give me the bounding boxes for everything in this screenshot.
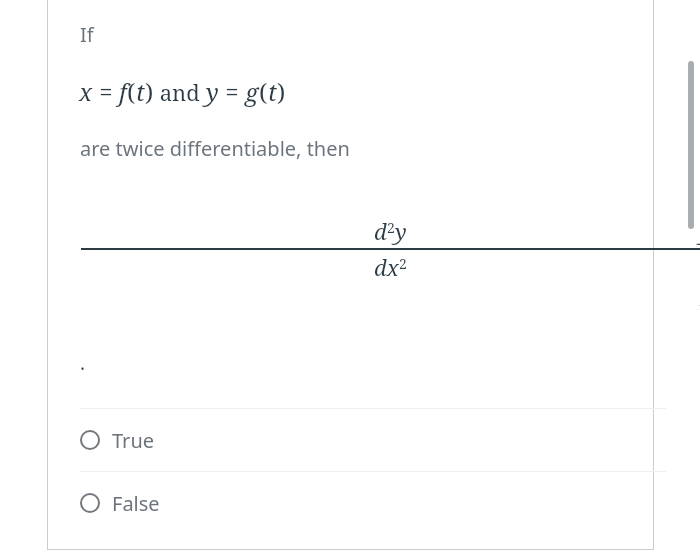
staticText: g — [245, 75, 259, 108]
staticText: t — [268, 75, 277, 108]
staticText: ) — [277, 75, 286, 108]
staticText: d — [374, 216, 387, 246]
staticText: and — [154, 77, 206, 107]
staticText: = — [219, 75, 245, 108]
staticText: y — [395, 216, 407, 246]
button[interactable]: Select False — [0, 472, 700, 534]
staticText: = — [93, 75, 119, 108]
staticText: 2 — [399, 254, 407, 273]
staticText: dx — [374, 252, 399, 282]
staticText: True — [112, 427, 155, 454]
button[interactable]: Select True — [0, 409, 700, 471]
other: Select False — [80, 493, 100, 513]
staticText: ( — [127, 75, 136, 108]
staticText: If — [80, 21, 94, 48]
staticText: False — [112, 490, 160, 517]
staticText: ) — [145, 75, 154, 108]
other: Select True — [80, 430, 100, 450]
staticText: y — [206, 75, 219, 108]
staticText: f — [119, 75, 127, 108]
staticText: 2 — [387, 218, 395, 237]
staticText: t — [136, 75, 145, 108]
staticText: ( — [259, 75, 268, 108]
staticText: . — [80, 350, 86, 376]
staticText: x — [79, 75, 93, 108]
staticText: are twice differentiable, then — [80, 135, 350, 162]
